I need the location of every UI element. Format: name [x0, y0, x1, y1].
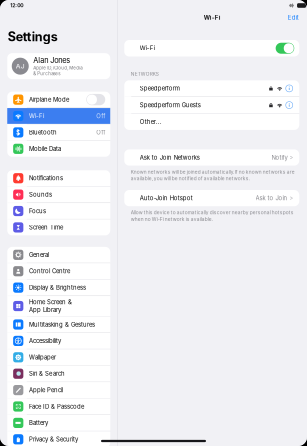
staticText: NETWORKS: [131, 71, 159, 77]
button[interactable]: Wi-Fi: [7, 108, 110, 124]
staticText: Accessibility: [29, 337, 61, 344]
button[interactable]: Mobile Data: [7, 141, 110, 157]
staticText: Speedperform: [140, 85, 180, 92]
button[interactable]: Control Centre: [7, 263, 110, 279]
staticText: Airplane Mode: [29, 96, 69, 103]
staticText: available, you will be notified of avail…: [131, 176, 250, 181]
staticText: Bluetooth: [29, 129, 57, 136]
staticText: Off: [96, 129, 105, 136]
button[interactable]: Privacy & Security: [7, 431, 110, 446]
button[interactable]: AJ: [7, 53, 110, 79]
button[interactable]: Ask to Join Networks: [124, 149, 299, 166]
button[interactable]: Other...: [124, 114, 299, 130]
button[interactable]: Battery: [7, 415, 110, 431]
staticText: Allow this device to automatically disco…: [131, 210, 294, 215]
staticText: Privacy & Security: [29, 436, 78, 443]
staticText: Control Centre: [29, 268, 70, 275]
button[interactable]: Sounds: [7, 187, 110, 203]
staticText: Edit: [288, 14, 299, 21]
button[interactable]: Siri & Search: [7, 366, 110, 382]
staticText: Sounds: [29, 191, 52, 198]
button[interactable]: Apple Pencil: [7, 382, 110, 398]
staticText: Ask to Join Networks: [140, 154, 200, 161]
button[interactable]: Airplane Mode: [7, 92, 110, 108]
staticText: Settings: [8, 29, 58, 44]
staticText: Apple Pencil: [29, 386, 63, 394]
button[interactable]: Edit: [288, 11, 299, 23]
staticText: Battery: [29, 419, 48, 426]
staticText: Siri & Search: [29, 370, 65, 377]
staticText: Other...: [140, 118, 162, 125]
button[interactable]: Multitasking & Gestures: [7, 317, 110, 332]
button[interactable]: Screen Time: [7, 219, 110, 235]
staticText: Speedperform Guests: [140, 101, 201, 109]
button[interactable]: Auto-Join Hotspot: [124, 190, 299, 206]
staticText: Wallpaper: [29, 354, 56, 361]
staticText: Wi-Fi: [29, 112, 44, 120]
staticText: Wi-Fi: [140, 45, 155, 52]
staticText: Wi-Fi: [204, 14, 221, 21]
staticText: Notify: [272, 154, 288, 161]
staticText: AJ: [16, 62, 25, 70]
staticText: Display & Brightness: [29, 284, 86, 291]
button[interactable]: Focus: [7, 203, 110, 219]
button[interactable]: Wallpaper: [7, 349, 110, 365]
staticText: Multitasking & Gestures: [29, 321, 95, 328]
staticText: Ask to Join: [256, 194, 288, 202]
button[interactable]: Display & Brightness: [7, 280, 110, 296]
staticText: Auto-Join Hotspot: [140, 194, 193, 202]
button[interactable]: Home Screen &: [7, 296, 110, 316]
staticText: Screen Time: [29, 224, 63, 231]
staticText: 12:00: [10, 2, 23, 8]
button[interactable]: Notifications: [7, 170, 110, 186]
staticText: Notifications: [29, 175, 63, 182]
staticText: Known networks will be joined automatica…: [131, 169, 295, 175]
staticText: Apple ID, iCloud, Media: [33, 65, 82, 71]
button[interactable]: Bluetooth: [7, 124, 110, 140]
staticText: App Library: [29, 306, 61, 314]
staticText: Home Screen &: [29, 299, 72, 306]
staticText: Face ID & Passcode: [29, 403, 84, 410]
staticText: Mobile Data: [29, 145, 61, 152]
button[interactable]: Accessibility: [7, 333, 110, 349]
button[interactable]: Speedperform: [124, 80, 299, 96]
staticText: Focus: [29, 207, 46, 215]
button[interactable]: Speedperform Guests: [124, 97, 299, 113]
button[interactable]: Face ID & Passcode: [7, 399, 110, 414]
button[interactable]: General: [7, 247, 110, 263]
staticText: Alan Jones: [33, 56, 70, 65]
staticText: Off: [96, 112, 105, 120]
staticText: & Purchases: [33, 71, 60, 76]
staticText: when no Wi-Fi network is available.: [131, 216, 213, 222]
staticText: General: [29, 251, 49, 258]
